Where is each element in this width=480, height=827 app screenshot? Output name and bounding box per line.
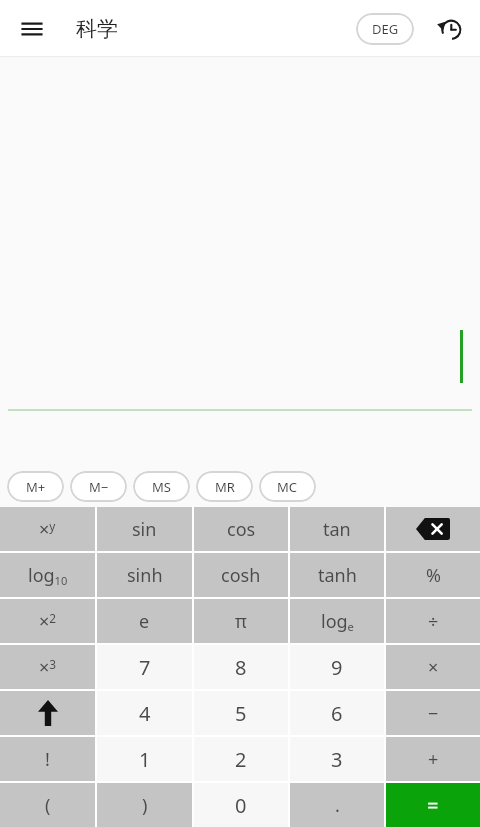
button[interactable]: Backspace (386, 507, 480, 551)
button[interactable]: . (290, 783, 384, 827)
button[interactable]: 4 (97, 691, 192, 735)
button[interactable]: ) (97, 783, 192, 827)
staticText: cos (227, 517, 256, 542)
button[interactable]: 1 (97, 737, 192, 781)
staticText: 1 (139, 746, 151, 773)
staticText: ×2 (39, 609, 57, 634)
staticText: tanh (318, 563, 357, 588)
button[interactable]: ! (0, 737, 95, 781)
button[interactable]: History (426, 5, 474, 53)
staticText: ) (142, 793, 148, 818)
staticText: DEG (372, 20, 399, 38)
staticText: % (426, 563, 441, 588)
button[interactable]: loge (290, 599, 384, 643)
staticText: × (428, 655, 439, 680)
staticText: MS (152, 478, 171, 496)
staticText: 8 (235, 654, 247, 681)
button[interactable]: ×3 (0, 645, 95, 689)
button[interactable]: 9 (290, 645, 384, 689)
button[interactable]: M+ (7, 471, 64, 502)
staticText: 9 (331, 654, 343, 681)
button[interactable]: 2 (194, 737, 288, 781)
staticText: M− (89, 478, 109, 496)
button[interactable]: 7 (97, 645, 192, 689)
button[interactable]: + (386, 737, 480, 781)
staticText: − (428, 701, 439, 726)
button[interactable]: % (386, 553, 480, 597)
staticText: loge (321, 609, 354, 634)
button[interactable]: 0 (194, 783, 288, 827)
staticText: π (235, 609, 247, 634)
staticText: MR (215, 478, 235, 496)
button[interactable]: 6 (290, 691, 384, 735)
staticText: ×3 (39, 655, 57, 680)
staticText: sinh (127, 563, 163, 588)
button[interactable]: cosh (194, 553, 288, 597)
staticText: tan (323, 517, 351, 542)
button[interactable]: Menu (8, 5, 56, 53)
button[interactable]: − (386, 691, 480, 735)
button[interactable]: M− (70, 471, 127, 502)
button[interactable]: × (386, 645, 480, 689)
button[interactable]: sin (97, 507, 192, 551)
staticText: M+ (26, 478, 46, 496)
button[interactable]: 5 (194, 691, 288, 735)
staticText: 5 (235, 700, 247, 727)
button[interactable]: cos (194, 507, 288, 551)
staticText: ×y (39, 517, 56, 542)
staticText: MC (277, 478, 298, 496)
staticText: 0 (235, 792, 247, 819)
button[interactable]: π (194, 599, 288, 643)
button[interactable]: log10 (0, 553, 95, 597)
staticText: 6 (331, 700, 343, 727)
staticText: 7 (139, 654, 151, 681)
button[interactable]: MC (259, 471, 316, 502)
staticText: e (139, 609, 150, 634)
button[interactable]: 8 (194, 645, 288, 689)
button[interactable]: ×2 (0, 599, 95, 643)
button[interactable]: ×y (0, 507, 95, 551)
button[interactable]: ÷ (386, 599, 480, 643)
staticText: + (428, 747, 439, 772)
button[interactable]: = (386, 783, 480, 827)
button[interactable]: sinh (97, 553, 192, 597)
button[interactable]: Up (0, 691, 95, 735)
staticText: 3 (331, 746, 343, 773)
staticText: sin (132, 517, 157, 542)
button[interactable]: tan (290, 507, 384, 551)
button[interactable]: MS (133, 471, 190, 502)
staticText: . (335, 793, 340, 818)
staticText: ( (45, 793, 51, 818)
staticText: log10 (28, 563, 68, 588)
button[interactable]: DEG (356, 13, 414, 45)
button[interactable]: MR (196, 471, 253, 502)
staticText: = (427, 792, 439, 819)
staticText: 4 (139, 700, 151, 727)
staticText: 科学 (76, 16, 118, 42)
button[interactable]: ( (0, 783, 95, 827)
button[interactable]: e (97, 599, 192, 643)
staticText: ! (45, 747, 50, 772)
staticText: ÷ (428, 609, 439, 634)
staticText: 2 (235, 746, 247, 773)
staticText: cosh (221, 563, 261, 588)
button[interactable]: tanh (290, 553, 384, 597)
button[interactable]: 3 (290, 737, 384, 781)
